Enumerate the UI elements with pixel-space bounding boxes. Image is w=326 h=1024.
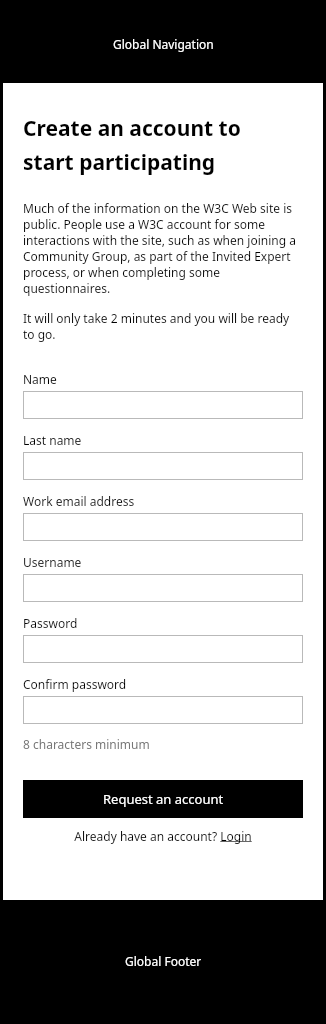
- staticText: 8 characters minimum: [23, 736, 150, 752]
- button[interactable]: Request an account: [23, 780, 303, 818]
- button[interactable]: [23, 452, 303, 480]
- button[interactable]: [23, 391, 303, 419]
- staticText: Confirm password: [23, 676, 127, 692]
- staticText: Much of the information on the W3C Web s…: [23, 200, 303, 296]
- button[interactable]: Global Navigation: [0, 0, 326, 83]
- staticText: Work email address: [23, 493, 135, 509]
- staticText: Global Footer: [125, 953, 202, 969]
- button[interactable]: Already have an account? Login: [74, 828, 252, 844]
- staticText: Request an account: [103, 790, 224, 808]
- button[interactable]: Global Footer: [0, 900, 326, 1024]
- staticText: Last name: [23, 432, 82, 448]
- staticText: It will only take 2 minutes and you will…: [23, 310, 303, 342]
- staticText: Global Navigation: [113, 36, 214, 52]
- button[interactable]: [23, 696, 303, 724]
- staticText: Username: [23, 554, 82, 570]
- button[interactable]: [23, 574, 303, 602]
- button[interactable]: [23, 635, 303, 663]
- staticText: Password: [23, 615, 78, 631]
- staticText: Create an account to start participating: [23, 114, 241, 176]
- staticText: Name: [23, 371, 57, 387]
- button[interactable]: [23, 513, 303, 541]
